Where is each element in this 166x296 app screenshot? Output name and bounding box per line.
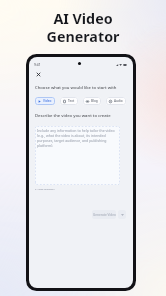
button[interactable]: More generate options xyxy=(118,210,126,219)
button[interactable]: Close xyxy=(34,70,43,79)
button[interactable]: Blog xyxy=(83,97,101,105)
staticText: Describe the video you want to create xyxy=(35,113,111,119)
button[interactable]: Include any information to help tailor t… xyxy=(35,126,120,185)
staticText: Audio xyxy=(114,99,123,103)
button[interactable]: Video xyxy=(35,97,55,105)
staticText: Choose what you would like to start with xyxy=(35,85,117,91)
staticText: Video xyxy=(43,99,52,103)
staticText: Generate Video xyxy=(93,213,116,217)
staticText: Include any information to help tailor t… xyxy=(37,128,117,148)
staticText: Blog xyxy=(91,99,98,103)
button[interactable]: Generate Video xyxy=(92,210,116,219)
button[interactable]: Audio xyxy=(106,97,126,105)
staticText: Text xyxy=(68,99,75,103)
staticText: AI Video Generator xyxy=(0,9,166,46)
staticText: 0 / 3000 characters xyxy=(35,188,55,191)
button[interactable]: Text xyxy=(60,97,78,105)
staticText: 9:41 xyxy=(34,62,41,66)
